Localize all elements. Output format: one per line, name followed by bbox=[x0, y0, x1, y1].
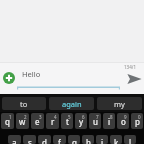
staticText: d bbox=[42, 137, 47, 144]
button[interactable]: my bbox=[97, 97, 142, 110]
staticText: w bbox=[19, 116, 26, 127]
button[interactable]: h bbox=[82, 135, 94, 144]
button[interactable]: l bbox=[124, 135, 136, 144]
staticText: 7 bbox=[96, 114, 99, 120]
button[interactable] bbox=[3, 72, 15, 84]
staticText: 3 bbox=[39, 114, 42, 120]
staticText: j bbox=[101, 137, 104, 144]
button[interactable]: a bbox=[8, 135, 21, 144]
button[interactable]: w bbox=[16, 113, 29, 129]
staticText: f bbox=[58, 137, 61, 144]
button[interactable]: f bbox=[53, 135, 66, 144]
staticText: t bbox=[66, 116, 69, 127]
staticText: again bbox=[62, 99, 82, 109]
staticText: 4 bbox=[54, 114, 57, 120]
button[interactable]: t bbox=[61, 113, 73, 129]
button[interactable]: k bbox=[110, 135, 122, 144]
button[interactable]: r bbox=[46, 113, 59, 129]
staticText: 2 bbox=[24, 114, 27, 120]
staticText: e bbox=[35, 116, 40, 127]
button[interactable]: e bbox=[31, 113, 44, 129]
staticText: a bbox=[12, 137, 17, 144]
button[interactable]: j bbox=[96, 135, 108, 144]
staticText: p bbox=[135, 116, 140, 127]
staticText: 0 bbox=[138, 114, 141, 120]
staticText: i bbox=[108, 116, 111, 127]
staticText: 1 bbox=[9, 114, 12, 120]
button[interactable]: d bbox=[38, 135, 51, 144]
staticText: u bbox=[93, 116, 98, 127]
button[interactable]: again bbox=[49, 97, 94, 110]
button[interactable] bbox=[124, 70, 144, 88]
staticText: my bbox=[114, 99, 125, 109]
staticText: k bbox=[114, 137, 119, 144]
staticText: 5 bbox=[68, 114, 71, 120]
button[interactable]: p bbox=[131, 113, 143, 129]
staticText: 9 bbox=[124, 114, 127, 120]
button[interactable]: g bbox=[68, 135, 80, 144]
staticText: g bbox=[72, 137, 77, 144]
staticText: 8 bbox=[110, 114, 113, 120]
button[interactable]: to bbox=[2, 97, 46, 110]
staticText: s bbox=[28, 137, 32, 144]
button[interactable]: s bbox=[23, 135, 36, 144]
button[interactable]: i bbox=[103, 113, 115, 129]
staticText: o bbox=[121, 116, 126, 127]
staticText: 134/1 bbox=[124, 64, 136, 70]
staticText: l bbox=[129, 137, 132, 144]
button[interactable]: q bbox=[1, 113, 14, 129]
staticText: q bbox=[5, 116, 10, 127]
staticText: h bbox=[86, 137, 91, 144]
button[interactable]: y bbox=[75, 113, 87, 129]
staticText: r bbox=[51, 116, 55, 127]
staticText: 6 bbox=[82, 114, 85, 120]
staticText: y bbox=[79, 116, 84, 127]
staticText: Hello bbox=[22, 69, 41, 79]
staticText: to bbox=[20, 99, 28, 109]
button[interactable]: o bbox=[117, 113, 129, 129]
button[interactable]: u bbox=[89, 113, 101, 129]
